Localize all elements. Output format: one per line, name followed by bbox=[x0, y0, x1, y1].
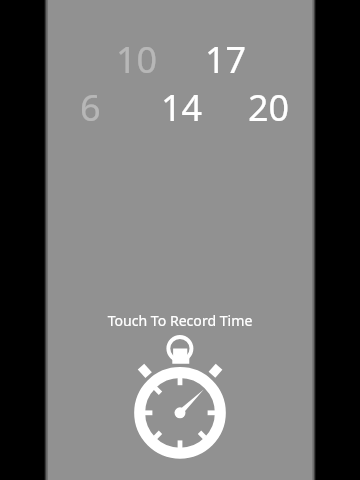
button[interactable]: 10 bbox=[45, 0, 315, 480]
staticText: 10 bbox=[116, 35, 158, 84]
button[interactable]: Touch To Record Time bbox=[45, 300, 315, 470]
staticText: Touch To Record Time bbox=[45, 311, 315, 330]
staticText: 20 bbox=[248, 83, 290, 132]
staticText: 17 bbox=[205, 35, 247, 84]
staticText: 6 bbox=[80, 83, 101, 132]
staticText: 14 bbox=[161, 83, 203, 132]
